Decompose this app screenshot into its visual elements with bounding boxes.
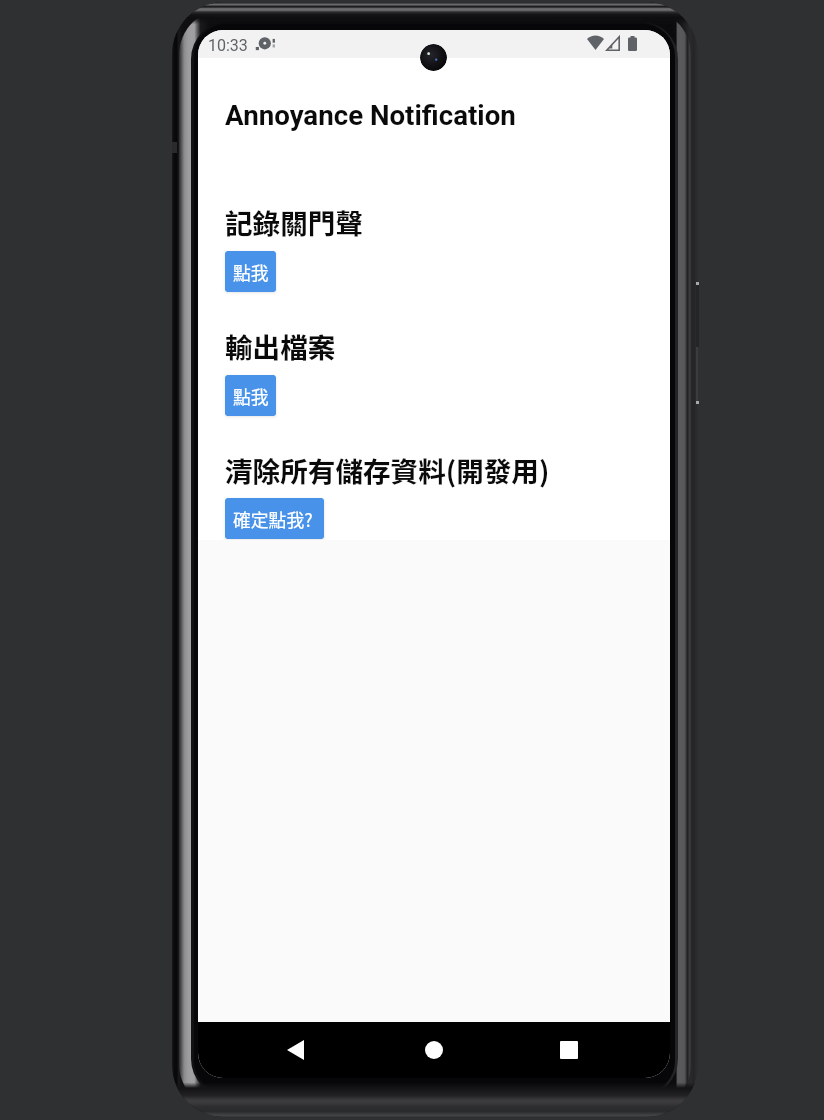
staticText: 記錄關門聲 [225,202,363,242]
staticText: 清除所有儲存資料(開發用) [225,450,550,490]
button[interactable]: Home [416,1032,452,1068]
staticText: 點我 [233,383,269,409]
button[interactable]: 確定點我? [225,498,324,539]
staticText: 確定點我? [233,506,313,532]
button[interactable]: 點我 [225,251,276,292]
staticText: 點我 [233,259,269,285]
staticText: 10:33 [208,36,248,55]
button[interactable]: Back [277,1032,313,1068]
button[interactable]: Recent apps [551,1032,587,1068]
button[interactable]: 點我 [225,375,276,416]
staticText: Annoyance Notification [225,99,516,131]
staticText: 輸出檔案 [225,326,336,366]
